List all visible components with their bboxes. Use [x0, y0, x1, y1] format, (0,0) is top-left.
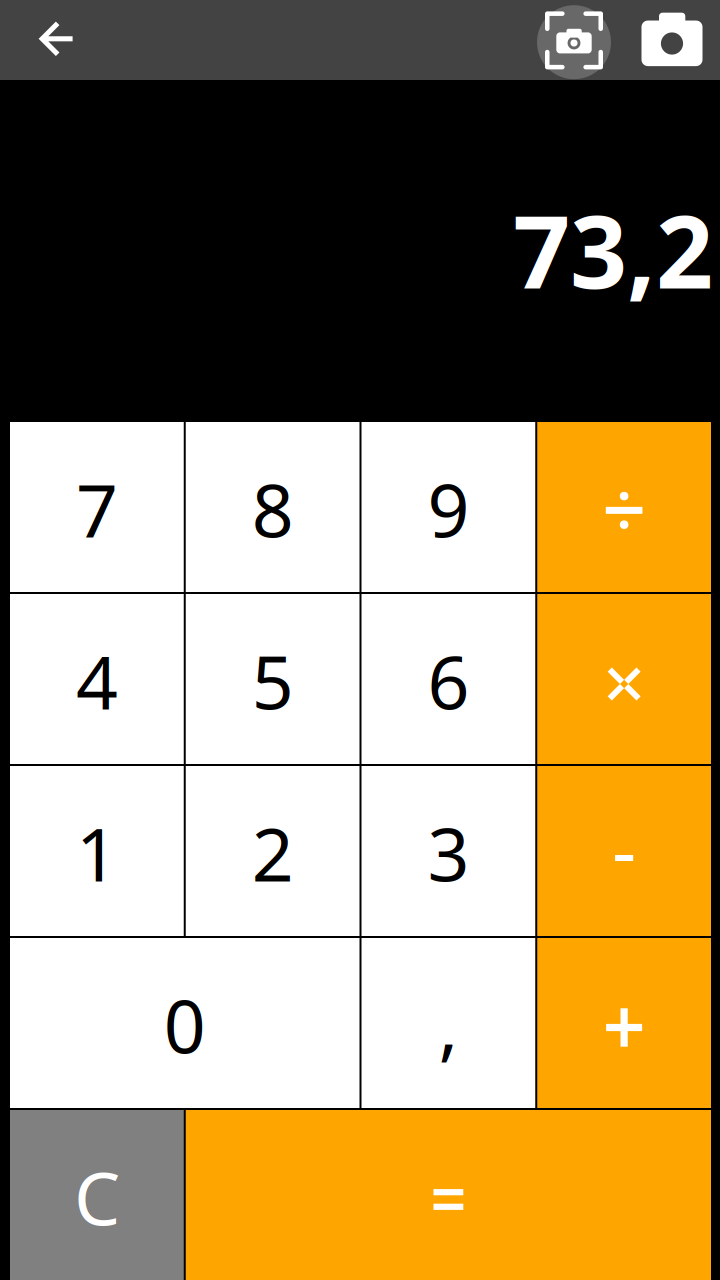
button[interactable]: 1 [10, 766, 184, 936]
button[interactable]: Multiply [537, 594, 711, 764]
staticText: 0 [164, 976, 206, 1074]
button[interactable]: Equals [186, 1110, 711, 1280]
staticText: 2 [252, 804, 294, 902]
button[interactable]: 9 [361, 422, 535, 592]
staticText: 1 [76, 804, 118, 902]
staticText: 73,2 [513, 183, 713, 316]
staticText: 9 [427, 460, 469, 558]
button[interactable]: 2 [186, 766, 360, 936]
button[interactable]: 3 [361, 766, 535, 936]
staticText: 6 [427, 632, 469, 730]
button[interactable]: 0 [10, 938, 359, 1108]
button[interactable]: Divide [537, 422, 711, 592]
button[interactable]: 7 [10, 422, 184, 592]
button[interactable]: , [361, 938, 535, 1108]
button[interactable]: 4 [10, 594, 184, 764]
staticText: 4 [76, 632, 118, 730]
button[interactable]: Back [0, 0, 110, 80]
staticText: , [438, 976, 458, 1074]
button[interactable]: 8 [186, 422, 360, 592]
button[interactable]: 5 [186, 594, 360, 764]
button[interactable]: C [10, 1110, 184, 1280]
button[interactable]: Plus [537, 938, 711, 1108]
staticText: 3 [427, 804, 469, 902]
staticText: 5 [252, 632, 294, 730]
staticText: 8 [252, 460, 294, 558]
button[interactable]: Minus [537, 766, 711, 936]
staticText: C [74, 1148, 120, 1246]
button[interactable]: Scan document [534, 0, 614, 80]
staticText: 7 [76, 460, 118, 558]
button[interactable]: Camera [632, 0, 712, 80]
button[interactable]: 6 [361, 594, 535, 764]
